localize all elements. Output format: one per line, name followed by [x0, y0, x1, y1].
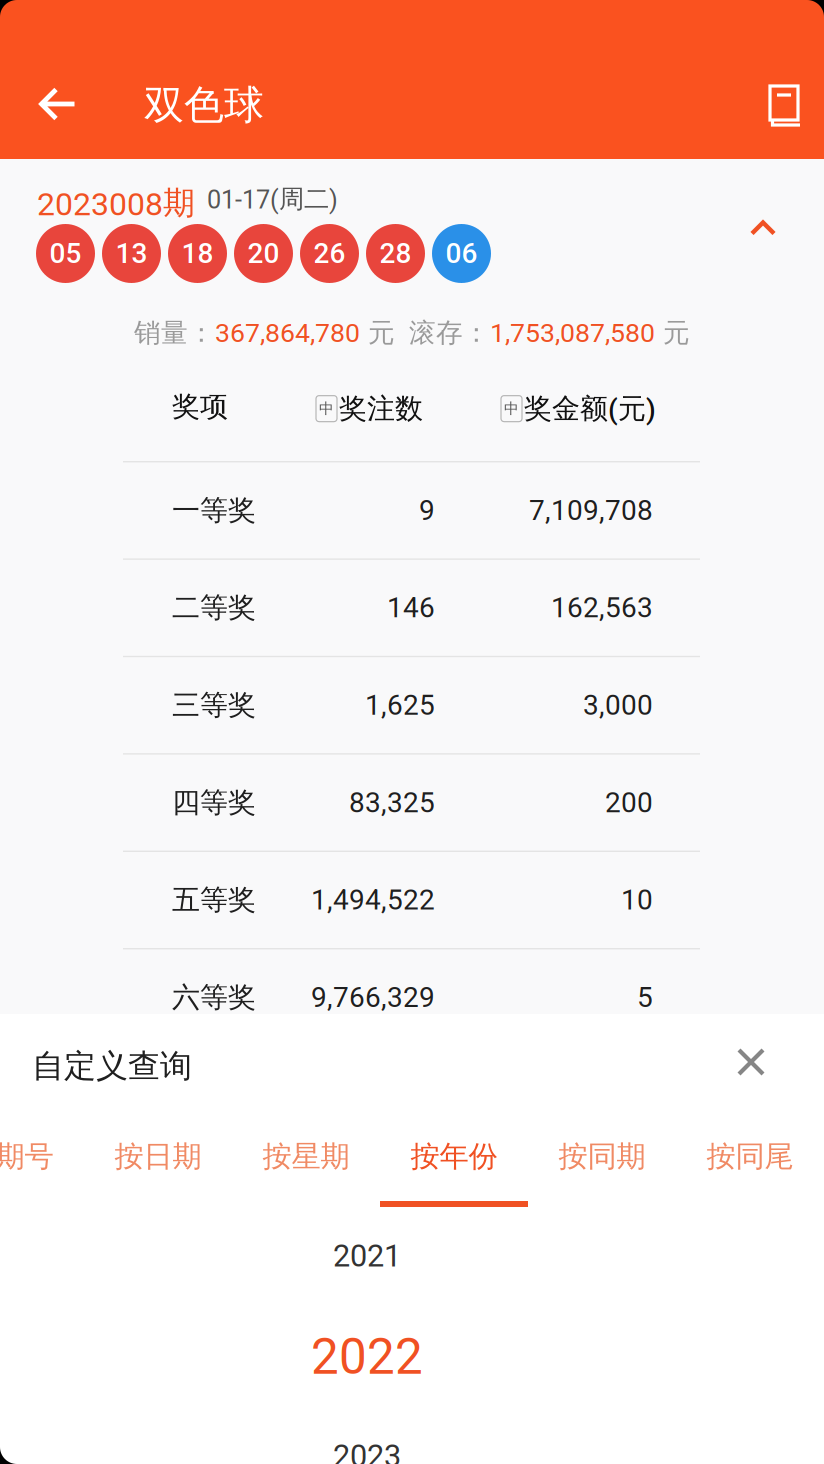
staticText: 10	[621, 884, 653, 916]
button[interactable]: Close	[713, 1024, 789, 1100]
staticText: 按日期	[114, 1138, 201, 1175]
button[interactable]: 按期号	[0, 1127, 84, 1219]
staticText: 1,753,087,580	[490, 317, 655, 348]
staticText: 162,563	[551, 591, 653, 624]
staticText: 中	[319, 399, 334, 418]
button[interactable]: 按年份	[380, 1127, 528, 1219]
staticText: 元	[360, 316, 395, 350]
staticText: 367,864,780	[215, 317, 360, 348]
staticText: 28	[379, 237, 411, 270]
staticText: 三等奖	[172, 688, 256, 723]
button[interactable]: Lottery rules	[749, 68, 821, 144]
staticText: 1,494,522	[311, 884, 435, 916]
staticText: 01-17(周二)	[207, 183, 338, 215]
button[interactable]: Back	[20, 66, 96, 142]
staticText: 13	[115, 237, 147, 270]
staticText: 一等奖	[172, 493, 256, 528]
staticText: 146	[387, 591, 435, 624]
staticText: 按同尾	[706, 1138, 793, 1175]
staticText: 18	[181, 237, 213, 270]
staticText: 26	[313, 237, 345, 270]
staticText: 奖注数	[339, 391, 423, 426]
staticText: 自定义查询	[32, 1046, 192, 1086]
button[interactable]: Collapse draw details	[728, 196, 798, 260]
staticText: 9	[419, 494, 435, 527]
staticText: 2023008期	[37, 183, 195, 223]
staticText: 20	[247, 237, 279, 270]
staticText: 六等奖	[172, 980, 256, 1015]
staticText: 5	[637, 981, 653, 1014]
button[interactable]: 按日期	[84, 1127, 232, 1219]
staticText: 05	[49, 237, 81, 270]
button[interactable]: 按同期	[528, 1127, 676, 1219]
staticText: 06	[445, 237, 477, 270]
staticText: 奖项	[172, 389, 228, 424]
staticText: 2023	[333, 1438, 401, 1464]
staticText: 200	[605, 786, 653, 819]
staticText: 9,766,329	[311, 981, 435, 1014]
staticText: 1,625	[365, 689, 435, 722]
staticText: 双色球	[144, 80, 264, 130]
staticText: 四等奖	[172, 785, 256, 820]
staticText: 二等奖	[172, 590, 256, 625]
staticText: 中	[504, 399, 519, 418]
staticText: 奖金额(元)	[524, 391, 656, 426]
staticText: 元	[655, 316, 690, 350]
button[interactable]: 按同尾	[676, 1127, 824, 1219]
staticText: 83,325	[349, 786, 435, 819]
staticText: 按星期	[262, 1138, 349, 1175]
staticText: 2022	[311, 1328, 423, 1386]
staticText: 滚存：	[409, 316, 490, 350]
staticText: 2021	[333, 1238, 401, 1274]
staticText: 按期号	[0, 1138, 53, 1175]
staticText: 五等奖	[172, 882, 256, 918]
staticText: 3,000	[583, 689, 653, 722]
staticText: 7,109,708	[529, 494, 653, 527]
staticText: 按同期	[558, 1138, 645, 1175]
button[interactable]: 按星期	[232, 1127, 380, 1219]
staticText: 销量：	[134, 316, 215, 350]
staticText: 按年份	[410, 1138, 497, 1175]
